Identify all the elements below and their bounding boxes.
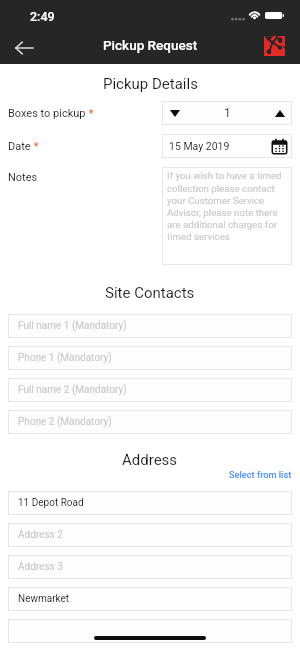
button[interactable]: Back bbox=[10, 34, 38, 62]
staticText: Address 3 bbox=[18, 561, 63, 573]
staticText: Phone 2 (Mandatory) bbox=[18, 416, 112, 428]
staticText: 1 bbox=[224, 106, 231, 120]
staticText: Phone 1 (Mandatory) bbox=[18, 352, 112, 364]
staticText: Pickup Details bbox=[103, 75, 198, 93]
button[interactable]: Phone 1 (Mandatory) bbox=[8, 346, 292, 370]
staticText: Notes bbox=[8, 171, 162, 184]
button[interactable]: Company logo bbox=[264, 36, 285, 56]
staticText: Date bbox=[8, 140, 31, 153]
staticText: Full name 2 (Mandatory) bbox=[18, 384, 127, 396]
button[interactable]: Pick date bbox=[162, 134, 292, 158]
staticText: Site Contacts bbox=[105, 284, 195, 302]
button[interactable] bbox=[8, 619, 292, 643]
button[interactable]: Full name 2 (Mandatory) bbox=[8, 378, 292, 402]
staticText: * bbox=[31, 140, 39, 153]
staticText: If you wish to have a timed collection p… bbox=[167, 170, 289, 242]
staticText: Full name 1 (Mandatory) bbox=[18, 320, 127, 332]
button[interactable]: Notes bbox=[162, 167, 292, 265]
staticText: * bbox=[86, 107, 94, 120]
button[interactable]: Number of boxes bbox=[162, 101, 292, 125]
button[interactable]: 11 Depot Road bbox=[8, 491, 292, 515]
staticText: Address bbox=[122, 451, 178, 469]
staticText: Newmarket bbox=[18, 593, 70, 605]
staticText: 15 May 2019 bbox=[169, 140, 230, 152]
staticText: 11 Depot Road bbox=[18, 497, 84, 509]
staticText: Address 2 bbox=[18, 529, 63, 541]
button[interactable]: Address 2 bbox=[8, 523, 292, 547]
button[interactable]: Phone 2 (Mandatory) bbox=[8, 410, 292, 434]
staticText: Pickup Request bbox=[103, 37, 198, 53]
staticText: 2:49 bbox=[30, 9, 55, 24]
button[interactable]: Address 3 bbox=[8, 555, 292, 579]
staticText: Boxes to pickup bbox=[8, 107, 86, 120]
button[interactable]: Select from list bbox=[229, 469, 292, 480]
button[interactable]: Full name 1 (Mandatory) bbox=[8, 314, 292, 338]
button[interactable]: Newmarket bbox=[8, 587, 292, 611]
